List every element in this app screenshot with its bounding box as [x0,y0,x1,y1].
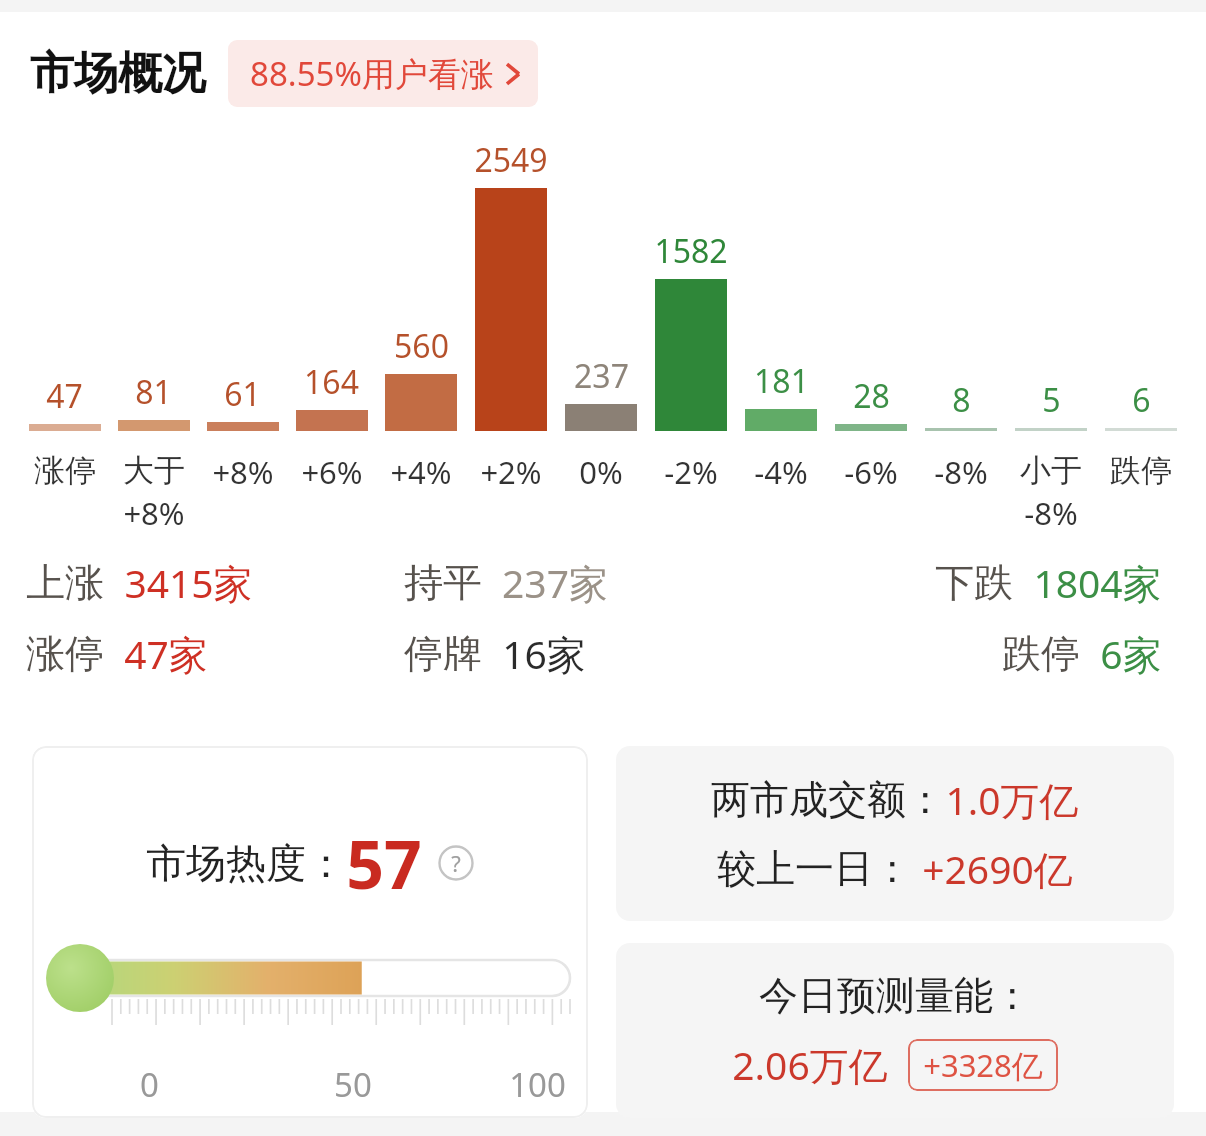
staticText: +8% [123,492,185,534]
staticText: 3415家 [124,556,253,609]
staticText: 0% [579,451,623,493]
staticText: 市场概况 [30,46,206,101]
staticText: 小于 [1020,451,1082,490]
staticText: -8% [934,451,988,493]
staticText: 16家 [502,627,586,680]
staticText: 跌停 [1002,629,1080,678]
staticText: 100 [509,1062,566,1107]
staticText: 1582 [654,229,728,273]
button[interactable]: 今日预测量能： [616,943,1174,1118]
staticText: 81 [135,370,172,414]
button[interactable]: 市场热度： [32,746,588,1118]
staticText: -2% [664,451,718,493]
staticText: +3328亿 [923,1044,1043,1086]
staticText: 0 [140,1062,159,1107]
staticText: 较上一日： [717,844,912,893]
staticText: 6家 [1100,627,1162,680]
staticText: 1804家 [1033,556,1162,609]
staticText: +4% [390,451,452,493]
staticText: 47家 [124,627,208,680]
staticText: 164 [304,360,359,404]
staticText: 2549 [474,138,548,182]
staticText: ? [451,848,461,878]
staticText: 大于 [123,451,185,490]
staticText: 237 [574,354,629,398]
staticText: 50 [334,1062,372,1107]
staticText: +2% [480,451,542,493]
staticText: 88.55%用户看涨 [250,51,494,96]
staticText: 市场热度： [146,838,346,888]
staticText: 2.06万亿 [732,1038,888,1091]
staticText: 5 [1042,378,1061,422]
staticText: 47 [46,374,83,418]
staticText: 今日预测量能： [759,971,1032,1020]
staticText: 涨停 [26,629,104,678]
staticText: 28 [853,374,890,418]
button[interactable]: 88.55%用户看涨 [228,40,538,107]
staticText: +2690亿 [922,842,1073,895]
staticText: -6% [844,451,898,493]
staticText: 跌停 [1110,451,1172,490]
staticText: 61 [224,372,261,416]
staticText: 下跌 [935,558,1013,607]
staticText: 237家 [502,556,608,609]
staticText: 181 [754,359,809,403]
staticText: 涨停 [34,451,96,490]
button[interactable]: 两市成交额： [616,746,1174,921]
staticText: 持平 [404,558,482,607]
staticText: 8 [952,378,971,422]
staticText: -4% [754,451,808,493]
other: 更多 [506,61,520,87]
staticText: +8% [212,451,274,493]
staticText: -8% [1024,492,1078,534]
staticText: 57 [346,818,422,908]
staticText: 1.0万亿 [945,773,1079,826]
staticText: 上涨 [26,558,104,607]
staticText: 两市成交额： [711,775,945,824]
staticText: +6% [301,451,363,493]
staticText: 停牌 [404,629,482,678]
staticText: 560 [394,324,449,368]
staticText: 6 [1132,378,1151,422]
button[interactable]: 说明 [438,845,474,881]
